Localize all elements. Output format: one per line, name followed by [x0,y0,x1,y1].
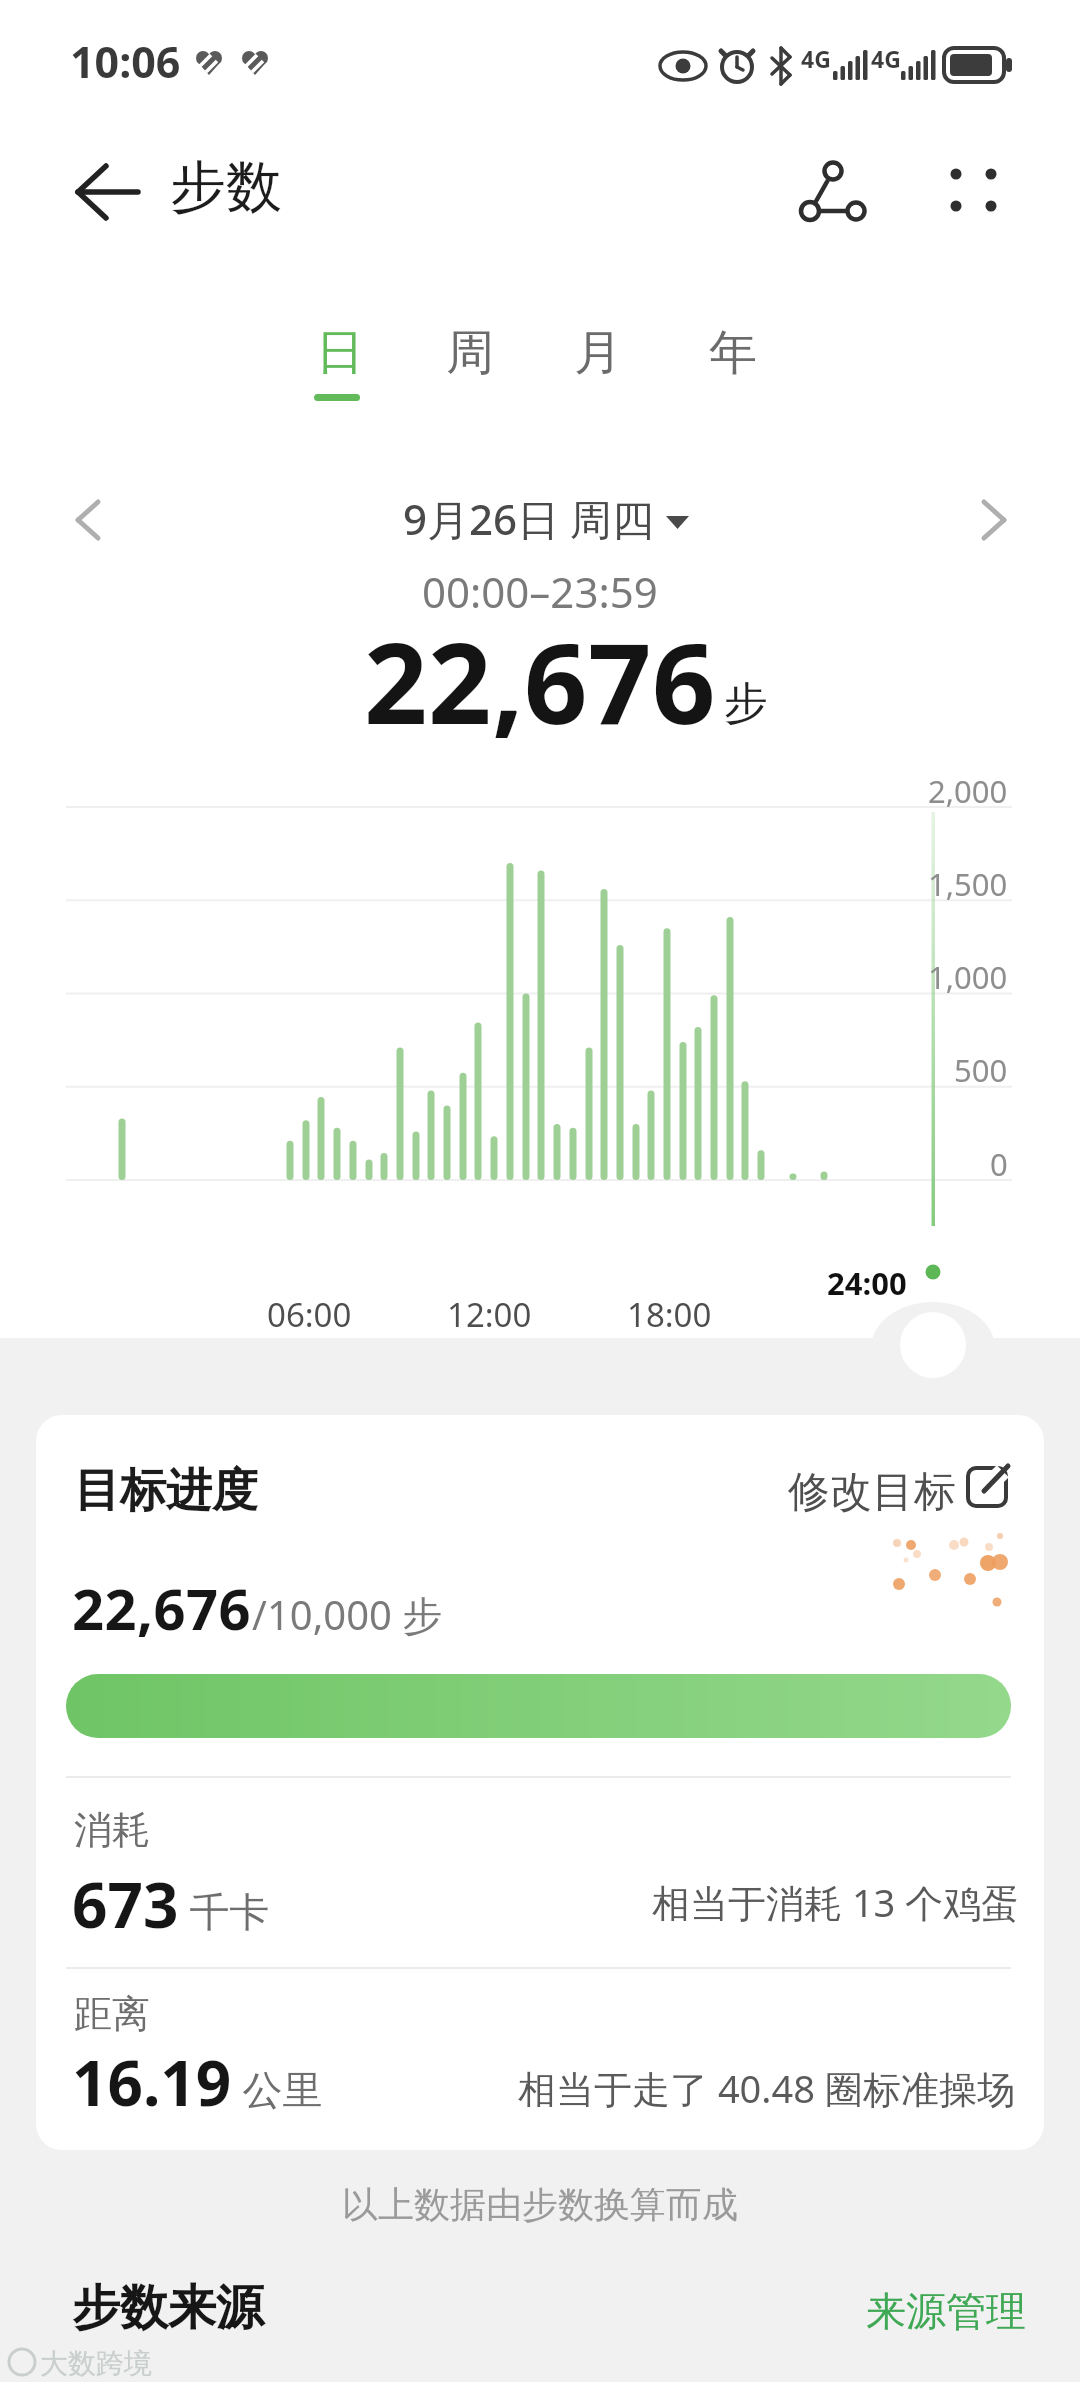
staticText: /10,000 步 [252,1587,443,1642]
staticText: 24:00 [827,1262,907,1304]
staticText: 1,500 [928,863,1008,905]
button[interactable]: 周 [425,315,515,411]
button[interactable] [900,1312,966,1378]
staticText: 以上数据由步数换算而成 [342,2182,738,2227]
button[interactable] [56,150,152,246]
staticText: 4G [871,43,901,74]
staticText: 距离 [74,1990,150,2038]
staticText: 1,000 [928,956,1008,998]
staticText: 日 [316,323,364,383]
staticText: 步数 [170,152,282,223]
staticText: 消耗 [74,1806,150,1854]
staticText: 来源管理 [866,2286,1026,2336]
button[interactable]: 月 [553,315,643,411]
staticText: 年 [709,323,757,383]
staticText: 相当于走了 40.48 圈标准操场 [518,2062,1015,2114]
staticText: 修改目标 [788,1466,956,1519]
button[interactable] [962,488,1026,552]
staticText: 673 [72,1862,179,1946]
staticText: 周 [446,323,494,383]
staticText: 22,676 [72,1570,252,1646]
staticText: 公里 [232,2061,323,2116]
staticText: 18:00 [627,1292,712,1337]
staticText: 步 [724,676,768,731]
button[interactable] [380,488,700,552]
button[interactable] [56,488,120,552]
staticText: 大数跨境 [40,2346,152,2381]
staticText: 00:00–23:59 [422,563,658,620]
button[interactable] [934,152,1014,232]
staticText: 10:06 [70,32,181,91]
staticText: 步数来源 [72,2278,264,2338]
staticText: 相当于消耗 13 个鸡蛋 [652,1876,1020,1928]
staticText: 月 [574,323,622,383]
button[interactable]: 年 [688,315,778,411]
staticText: 16.19 [72,2040,232,2124]
staticText: 千卡 [179,1883,270,1938]
button[interactable] [770,1450,1020,1520]
staticText: 9月26日 周四 [403,490,654,547]
staticText: 12:00 [447,1292,532,1337]
button[interactable]: 来源管理 [866,2280,1036,2340]
staticText: 目标进度 [74,1462,258,1520]
staticText: 2,000 [928,770,1008,812]
staticText: 500 [954,1049,1008,1091]
staticText: 4G [801,43,831,74]
staticText: 0 [990,1143,1008,1185]
button[interactable] [786,150,878,242]
staticText: 06:00 [267,1292,352,1337]
button[interactable]: 日 [295,315,385,411]
staticText: 22,676 [364,605,717,756]
